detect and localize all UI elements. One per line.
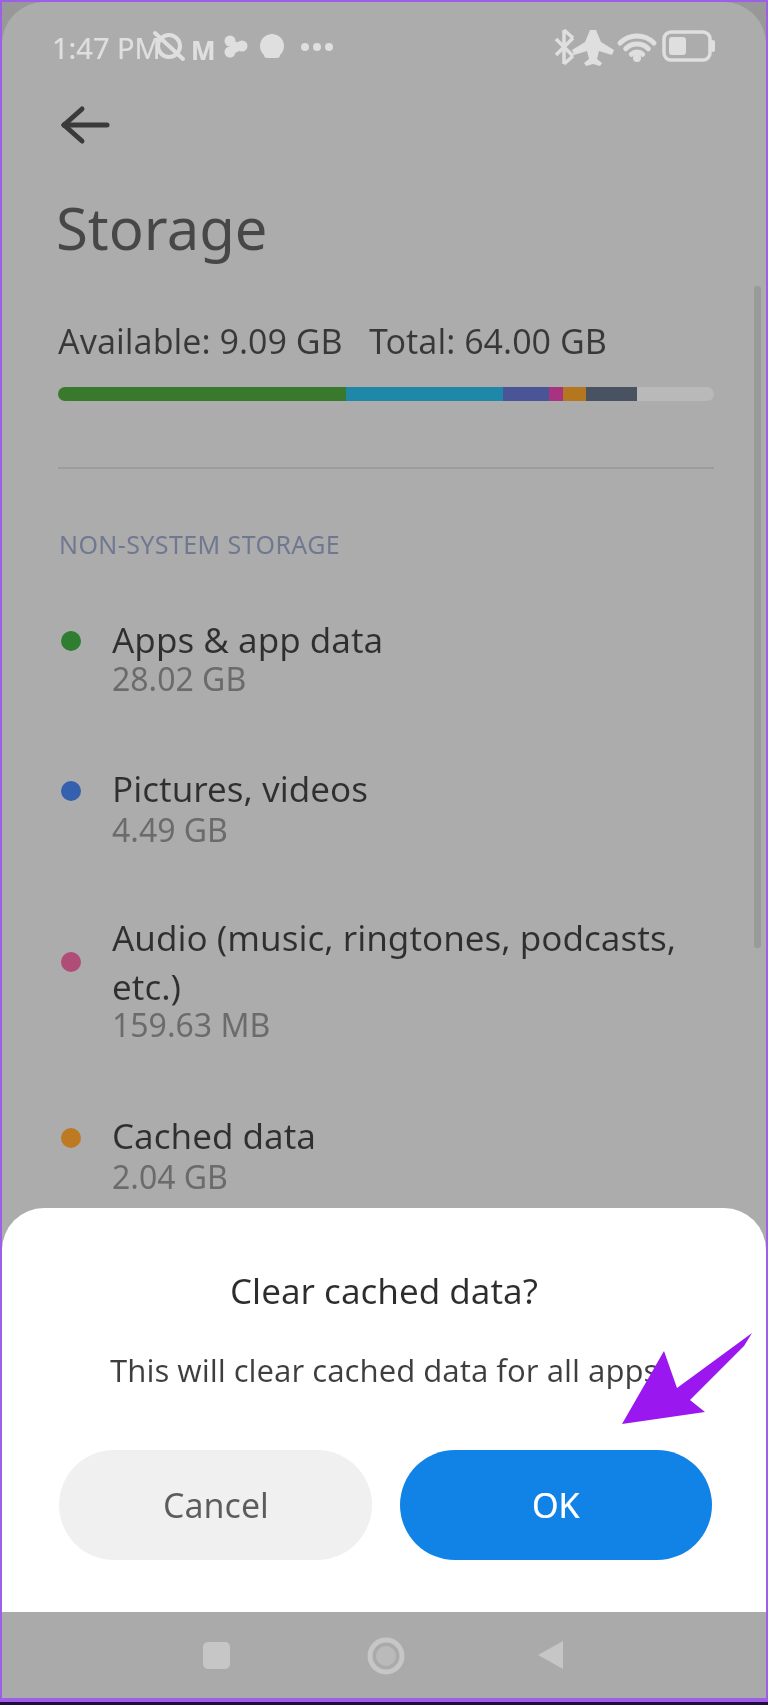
staticText: Cancel	[163, 1482, 269, 1528]
staticText: Clear cached data?	[230, 1267, 538, 1315]
staticText: Storage	[56, 188, 268, 267]
button[interactable]	[203, 1642, 230, 1669]
staticText: 159.63 MB	[112, 1003, 271, 1047]
button[interactable]: OK	[400, 1450, 712, 1560]
button[interactable]	[57, 102, 113, 148]
staticText: 4.49 GB	[112, 808, 228, 852]
button[interactable]	[536, 1641, 566, 1669]
staticText: Cached data	[112, 1112, 316, 1160]
staticText: 28.02 GB	[112, 657, 247, 701]
staticText: NON-SYSTEM STORAGE	[59, 527, 341, 561]
staticText: Apps & app data	[112, 616, 384, 664]
button[interactable]	[42, 757, 722, 852]
staticText: OK	[532, 1482, 580, 1528]
staticText: Total: 64.00 GB	[369, 318, 607, 364]
staticText: M	[191, 32, 216, 67]
staticText: This will clear cached data for all apps	[110, 1349, 659, 1391]
staticText: Audio (music, ringtones, podcasts, etc.)	[112, 914, 677, 1010]
staticText: Pictures, videos	[112, 765, 369, 813]
button[interactable]	[42, 608, 722, 701]
staticText: 2.04 GB	[112, 1155, 228, 1199]
button[interactable]	[366, 1636, 406, 1676]
button[interactable]	[42, 1104, 722, 1199]
button[interactable]: Cancel	[59, 1450, 372, 1560]
staticText: 1:47 PM	[52, 28, 161, 67]
button[interactable]	[42, 906, 722, 1047]
staticText: Available: 9.09 GB	[58, 318, 343, 364]
